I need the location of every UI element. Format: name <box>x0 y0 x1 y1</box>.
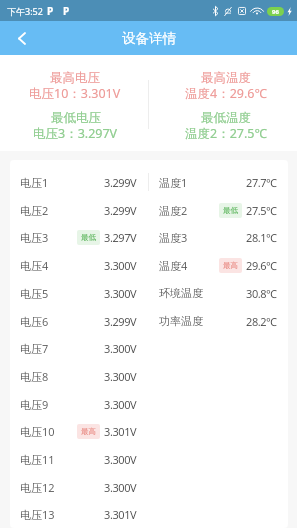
button[interactable]: 温度1 <box>149 168 288 196</box>
button[interactable]: 电压3 <box>10 223 148 251</box>
staticText: 最低 <box>223 206 239 216</box>
button[interactable]: 电压5 <box>10 279 148 307</box>
button[interactable]: 电压7 <box>10 334 148 362</box>
staticText: 3.300V <box>104 286 137 301</box>
staticText: 27.5℃ <box>246 203 277 218</box>
staticText: 3.300V <box>104 480 137 495</box>
staticText: 3.297V <box>104 230 137 245</box>
staticText: 27.7℃ <box>246 175 277 190</box>
staticText: P <box>63 4 70 18</box>
staticText: 96 <box>272 8 279 16</box>
other: Charging <box>287 7 292 16</box>
staticText: 电压6 <box>20 314 49 329</box>
staticText: 电压1 <box>20 175 49 190</box>
staticText: 设备详情 <box>122 30 176 47</box>
staticText: 电压2 <box>20 203 49 218</box>
staticText: 温度2 <box>159 203 188 218</box>
staticText: 3.299V <box>104 175 137 190</box>
staticText: 3.299V <box>104 203 137 218</box>
button[interactable]: 最低温度 <box>185 110 267 140</box>
staticText: 下午3:52 <box>7 5 43 17</box>
staticText: 功率温度 <box>159 314 203 328</box>
staticText: 电压7 <box>20 341 49 356</box>
staticText: 电压8 <box>20 369 49 384</box>
button[interactable]: 电压2 <box>10 196 148 224</box>
staticText: 电压3：3.297V <box>33 125 118 140</box>
button[interactable]: 功率温度 <box>149 307 288 335</box>
staticText: 3.301V <box>104 507 137 522</box>
staticText: 29.6℃ <box>246 258 277 273</box>
staticText: 最高电压 <box>50 70 100 85</box>
button[interactable]: Back <box>0 21 44 55</box>
button[interactable]: 温度3 <box>149 223 288 251</box>
staticText: 28.2℃ <box>246 314 277 329</box>
staticText: 3.300V <box>104 369 137 384</box>
other: Wi-Fi <box>252 7 262 15</box>
button[interactable]: 最高温度 <box>185 70 267 100</box>
staticText: 电压9 <box>20 397 49 412</box>
staticText: 电压3 <box>20 230 49 245</box>
staticText: 最高 <box>81 427 97 437</box>
other: No SIM <box>238 7 246 15</box>
button[interactable]: 温度4 <box>149 251 288 279</box>
staticText: 环境温度 <box>159 286 203 300</box>
button[interactable]: 电压1 <box>10 168 148 196</box>
staticText: 最低 <box>81 233 97 243</box>
other: Bluetooth <box>212 6 219 16</box>
button[interactable]: 电压4 <box>10 251 148 279</box>
button[interactable]: 电压8 <box>10 362 148 390</box>
button[interactable]: 温度2 <box>149 196 288 224</box>
staticText: 3.301V <box>104 424 137 439</box>
staticText: 温度4 <box>159 258 188 273</box>
button[interactable]: 电压13 <box>10 500 148 528</box>
staticText: 30.8℃ <box>246 286 277 301</box>
staticText: 最高 <box>223 261 239 271</box>
button[interactable]: 电压12 <box>10 473 148 501</box>
staticText: 28.1℃ <box>246 230 277 245</box>
staticText: 电压5 <box>20 286 49 301</box>
button[interactable]: 电压10 <box>10 417 148 445</box>
staticText: 3.300V <box>104 397 137 412</box>
staticText: 最高温度 <box>201 70 251 85</box>
button[interactable]: 最高电压 <box>29 70 121 100</box>
button[interactable]: 最低电压 <box>33 110 118 140</box>
staticText: 电压4 <box>20 258 49 273</box>
staticText: 电压10 <box>20 424 55 439</box>
staticText: 3.300V <box>104 258 137 273</box>
staticText: 3.299V <box>104 314 137 329</box>
staticText: 温度3 <box>159 230 188 245</box>
staticText: 温度4：29.6℃ <box>185 85 267 100</box>
staticText: 电压13 <box>20 507 55 522</box>
staticText: 3.300V <box>104 452 137 467</box>
button[interactable]: 电压6 <box>10 307 148 335</box>
staticText: P <box>47 4 54 18</box>
staticText: 温度2：27.5℃ <box>185 125 267 140</box>
button[interactable]: 电压9 <box>10 390 148 418</box>
staticText: 温度1 <box>159 175 188 190</box>
staticText: 最低温度 <box>201 110 251 125</box>
button[interactable]: 电压11 <box>10 445 148 473</box>
staticText: 最低电压 <box>51 110 101 125</box>
staticText: 电压12 <box>20 480 55 495</box>
button[interactable]: 环境温度 <box>149 279 288 307</box>
staticText: 电压10：3.301V <box>29 85 121 100</box>
staticText: 电压11 <box>20 452 55 467</box>
other: Alarm off <box>224 7 232 16</box>
staticText: 3.300V <box>104 341 137 356</box>
